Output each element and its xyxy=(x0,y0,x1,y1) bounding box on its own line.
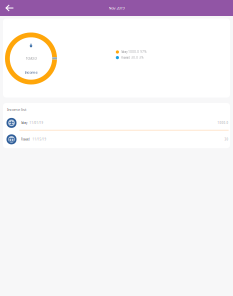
staticText: Income list xyxy=(7,107,26,112)
staticText: Salary xyxy=(21,121,27,125)
staticText: Reward 30.0 3% xyxy=(121,56,143,59)
staticText: 30 xyxy=(224,138,228,141)
button[interactable]: Reward xyxy=(3,131,230,148)
staticText: 11/15/19 xyxy=(32,138,46,141)
staticText: 1000.0 xyxy=(217,121,228,125)
staticText: 11/01/19 xyxy=(29,121,43,125)
staticText: 1030.0 xyxy=(25,56,36,61)
button[interactable]: Back xyxy=(0,0,19,16)
staticText: Salary 1000.0 97% xyxy=(121,50,146,54)
button[interactable]: Salary xyxy=(3,116,230,130)
staticText: Nov 2019 xyxy=(108,5,124,11)
staticText: Reward xyxy=(21,138,30,141)
staticText: Income xyxy=(24,69,37,75)
